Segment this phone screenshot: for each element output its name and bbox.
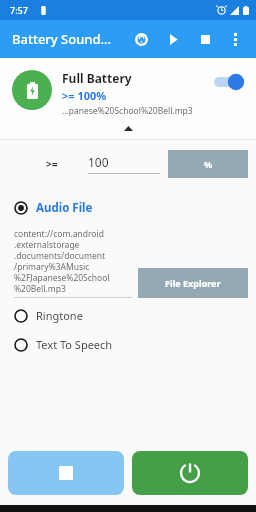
- staticText: Audio File: [36, 200, 93, 216]
- button[interactable]: Enable alarm: [212, 70, 246, 94]
- staticText: >=: [46, 157, 58, 171]
- staticText: …panese%20School%20Bell.mp3: [62, 105, 193, 117]
- button[interactable]: Stop: [192, 26, 218, 52]
- staticText: >= 100%: [62, 88, 107, 103]
- button[interactable]: 100: [88, 154, 160, 174]
- button[interactable]: %: [168, 150, 248, 178]
- button[interactable]: Full Battery: [0, 58, 256, 140]
- staticText: Battery Sound…: [12, 30, 112, 48]
- button[interactable]: content://com.android .externalstorage .…: [14, 228, 132, 298]
- button[interactable]: More options: [222, 26, 248, 52]
- staticText: Full Battery: [62, 70, 132, 86]
- staticText: content://com.android .externalstorage .…: [14, 228, 110, 294]
- button[interactable]: File Explorer: [138, 268, 248, 298]
- button[interactable]: Help: [128, 26, 154, 52]
- staticText: 100: [88, 154, 109, 170]
- button[interactable]: Audio File: [14, 200, 256, 216]
- button[interactable]: Stop: [8, 451, 124, 495]
- staticText: %: [204, 158, 213, 170]
- staticText: 7:57: [10, 4, 28, 16]
- staticText: File Explorer: [165, 277, 221, 289]
- button[interactable]: Ringtone: [14, 308, 256, 323]
- staticText: Text To Speech: [36, 337, 113, 352]
- button[interactable]: Play: [160, 26, 186, 52]
- button[interactable]: Power on: [132, 451, 248, 495]
- button[interactable]: Text To Speech: [14, 337, 256, 352]
- staticText: Ringtone: [36, 308, 83, 323]
